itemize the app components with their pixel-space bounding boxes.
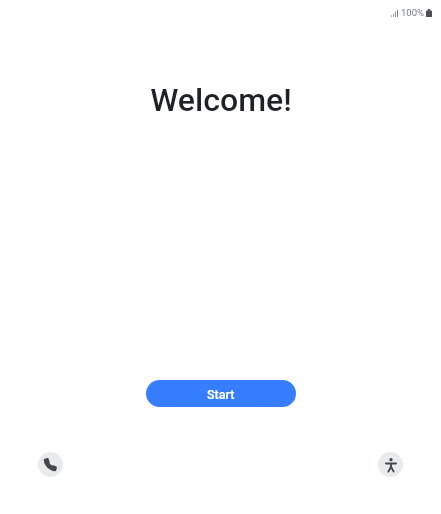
button[interactable]: Call support bbox=[38, 452, 63, 477]
staticText: Welcome! bbox=[150, 81, 292, 119]
staticText: Start bbox=[207, 387, 235, 402]
button[interactable]: Accessibility bbox=[378, 452, 403, 477]
button[interactable]: Start bbox=[146, 380, 296, 407]
staticText: 100% bbox=[401, 7, 424, 18]
